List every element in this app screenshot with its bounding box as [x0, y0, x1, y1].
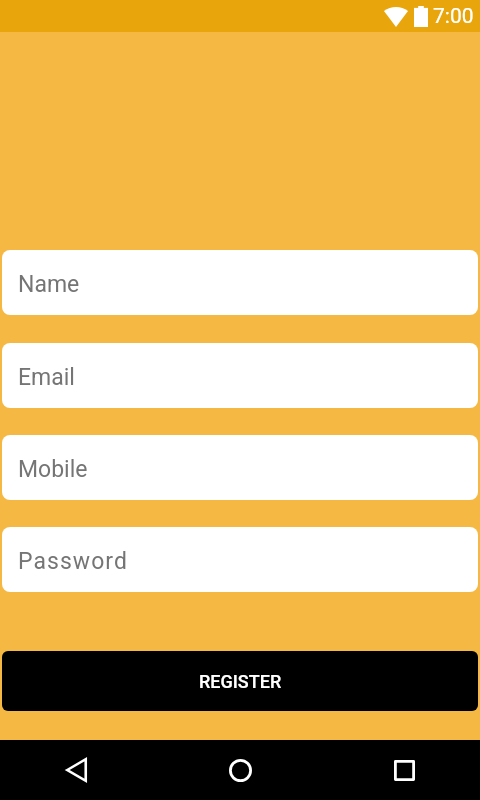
button[interactable]: Name: [2, 250, 478, 315]
staticText: Name: [18, 271, 80, 298]
button[interactable]: Recents: [364, 740, 444, 800]
staticText: Email: [18, 364, 75, 391]
button[interactable]: Home: [200, 740, 280, 800]
button[interactable]: Password: [2, 527, 478, 592]
staticText: Mobile: [18, 456, 88, 483]
button[interactable]: Email: [2, 343, 478, 408]
staticText: REGISTER: [199, 671, 282, 692]
button[interactable]: Mobile: [2, 435, 478, 500]
button[interactable]: Back: [36, 740, 116, 800]
button[interactable]: REGISTER: [2, 651, 478, 711]
staticText: 7:00: [433, 4, 474, 29]
staticText: Password: [18, 548, 128, 575]
